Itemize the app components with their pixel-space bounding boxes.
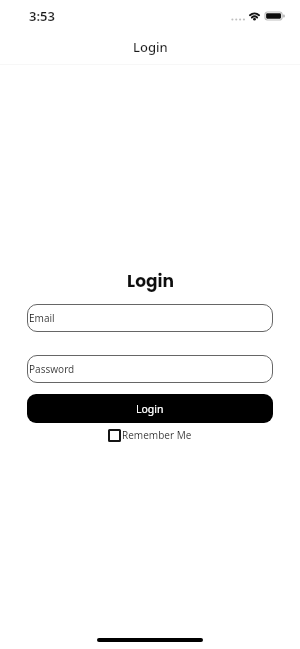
other: Battery full (265, 12, 285, 20)
button[interactable]: Email (27, 304, 273, 332)
staticText: 3:53 (29, 7, 55, 25)
button[interactable]: Remember Me (108, 428, 192, 442)
button[interactable]: Login (27, 394, 273, 423)
button[interactable]: Password (27, 355, 273, 383)
other: Cellular signal (230, 16, 246, 23)
staticText: Remember Me (122, 428, 192, 442)
staticText: Email (29, 311, 55, 325)
staticText: Login (136, 402, 164, 416)
staticText: Login (133, 38, 168, 56)
other: Wi-Fi connected (246, 10, 263, 23)
staticText: Login (127, 269, 174, 293)
staticText: Password (29, 362, 75, 376)
